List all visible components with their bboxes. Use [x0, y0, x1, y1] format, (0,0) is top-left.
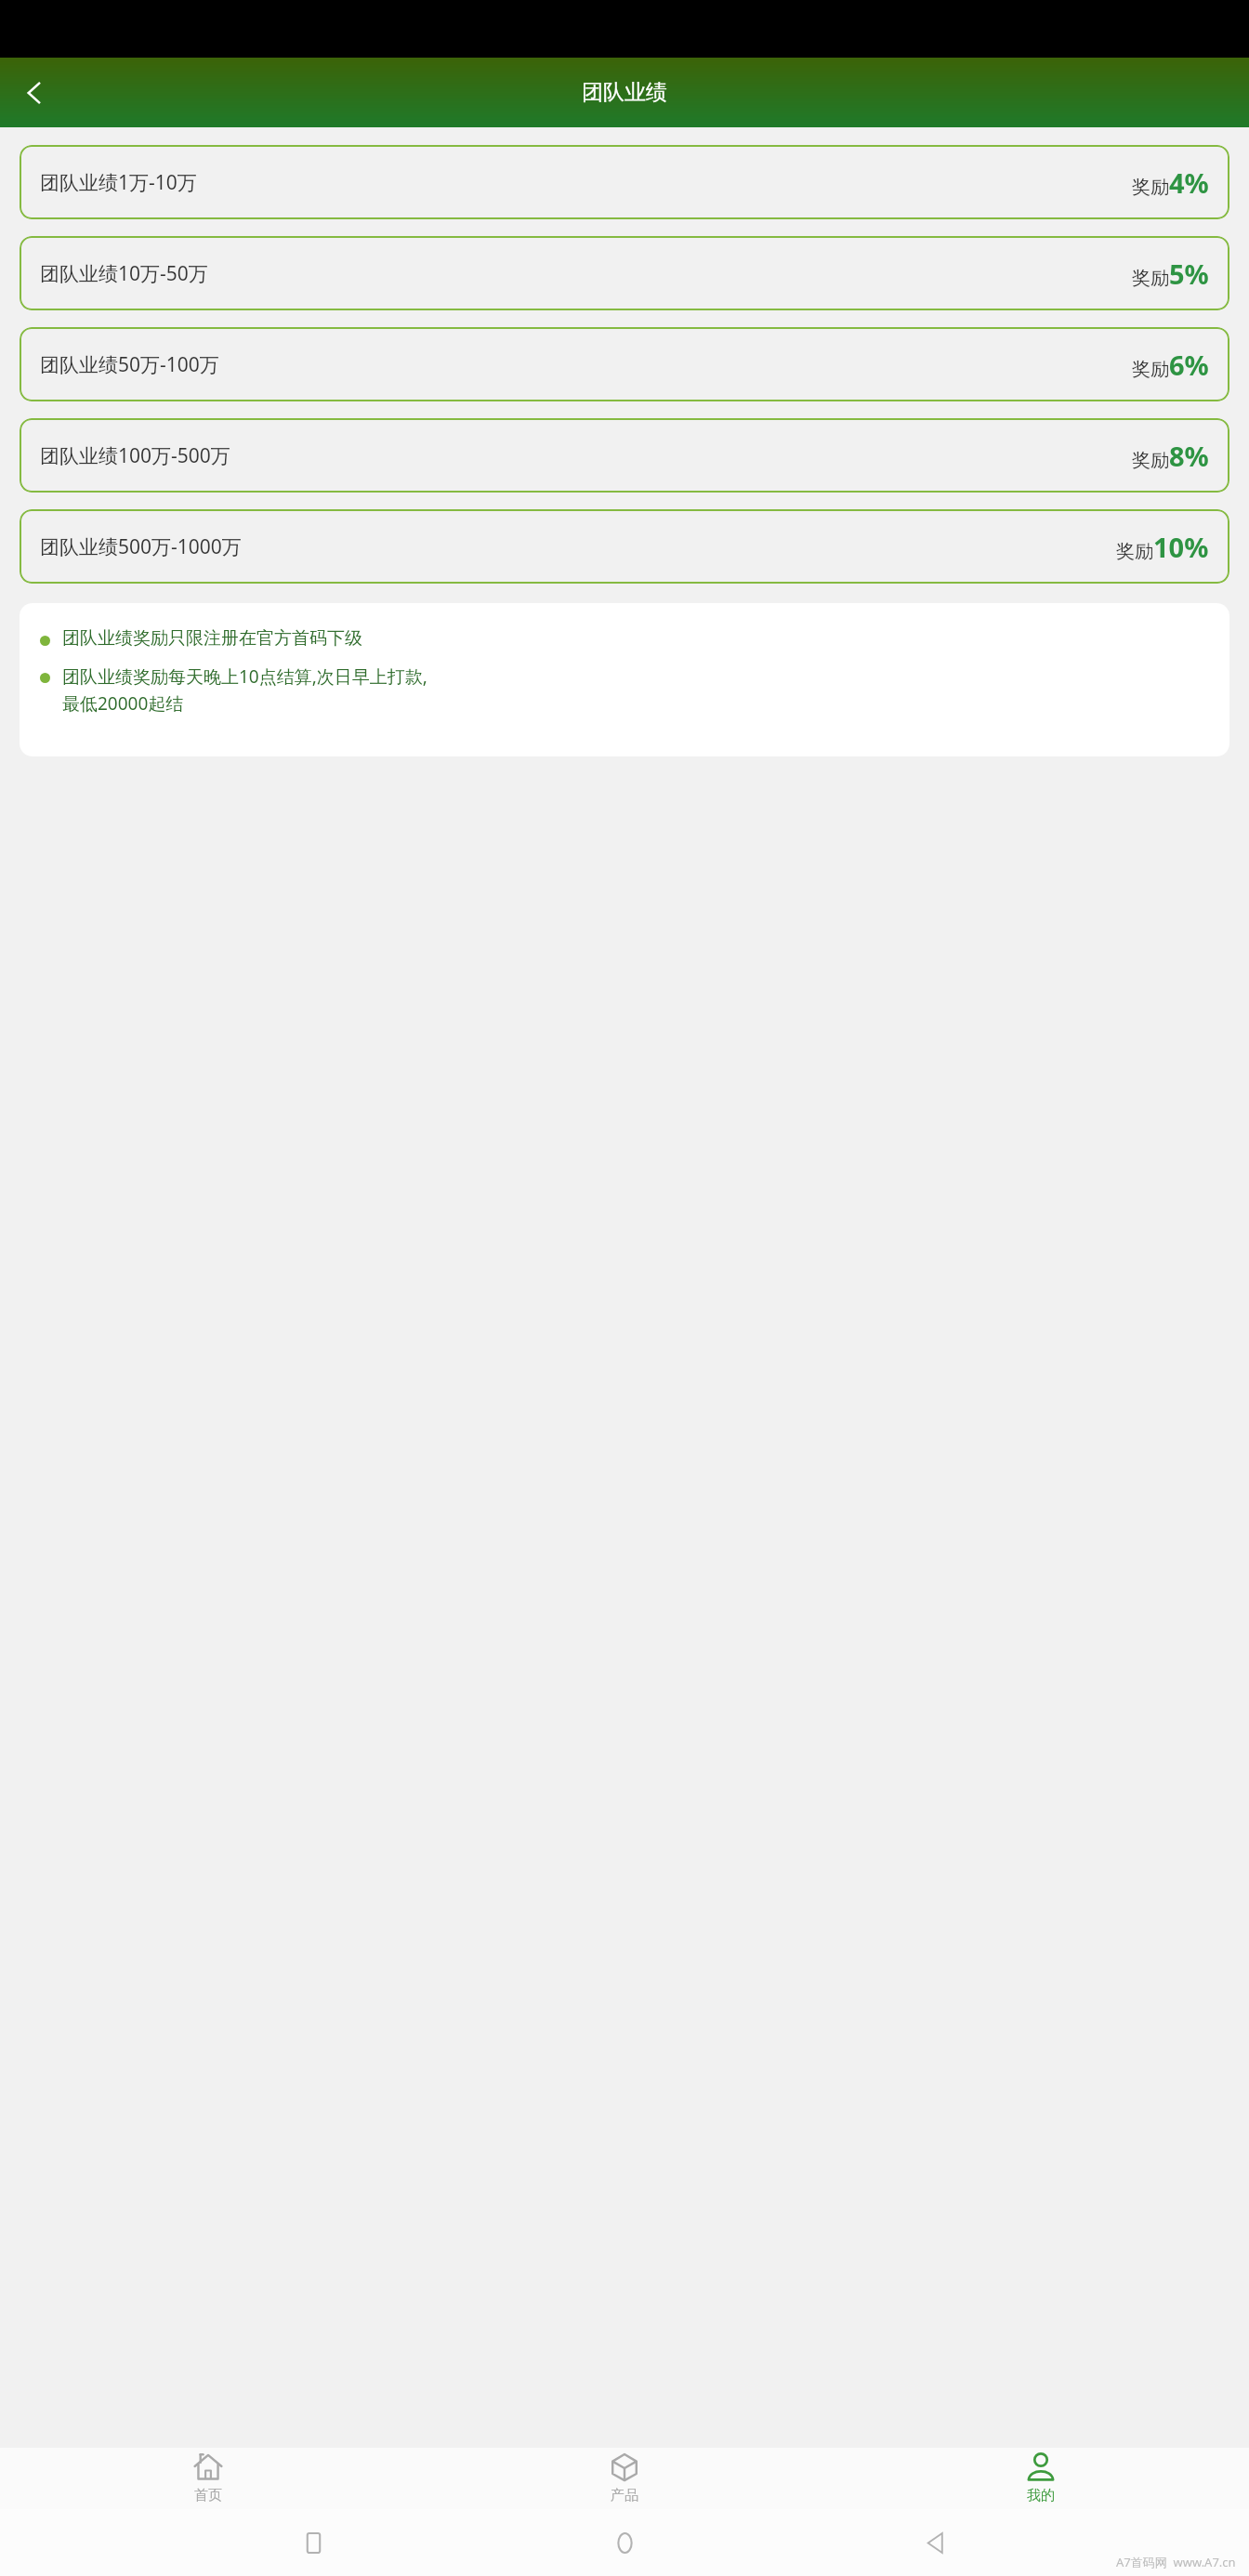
button[interactable]: 团队业绩1万-10万	[20, 145, 1229, 219]
staticText: 8%	[1169, 438, 1209, 474]
button[interactable]: 产品	[416, 2448, 833, 2509]
staticText: 首页	[194, 2487, 222, 2504]
button[interactable]: Back	[911, 2517, 961, 2568]
staticText: 奖励	[1132, 176, 1169, 199]
button[interactable]: Recents	[288, 2517, 338, 2568]
button[interactable]: 团队业绩10万-50万	[20, 236, 1229, 310]
staticText: 团队业绩	[582, 79, 667, 106]
staticText: 团队业绩奖励每天晚上10点结算,次日早上打款, 最低20000起结	[62, 664, 427, 716]
staticText: 4%	[1169, 164, 1209, 201]
button[interactable]: 团队业绩100万-500万	[20, 418, 1229, 493]
staticText: 奖励	[1116, 540, 1153, 563]
staticText: 6%	[1169, 347, 1209, 383]
staticText: 团队业绩50万-100万	[40, 351, 1132, 378]
staticText: 奖励	[1132, 358, 1169, 381]
button[interactable]: 我的	[833, 2448, 1249, 2509]
staticText: 5%	[1169, 256, 1209, 292]
button[interactable]: 团队业绩500万-1000万	[20, 509, 1229, 584]
staticText: A7首码网 www.A7.cn	[1116, 2554, 1236, 2570]
staticText: 奖励	[1132, 267, 1169, 290]
staticText: 团队业绩10万-50万	[40, 260, 1132, 287]
button[interactable]: 首页	[0, 2448, 416, 2509]
staticText: 奖励	[1132, 449, 1169, 472]
staticText: 团队业绩1万-10万	[40, 169, 1132, 196]
staticText: 团队业绩100万-500万	[40, 442, 1132, 469]
staticText: 10%	[1153, 529, 1209, 565]
staticText: 我的	[1027, 2487, 1055, 2504]
staticText: 产品	[611, 2487, 638, 2504]
staticText: 团队业绩500万-1000万	[40, 533, 1116, 560]
button[interactable]: 团队业绩50万-100万	[20, 327, 1229, 401]
button[interactable]: Home	[599, 2517, 650, 2568]
staticText: 团队业绩奖励只限注册在官方首码下级	[62, 627, 362, 650]
button[interactable]: Back	[7, 66, 61, 120]
